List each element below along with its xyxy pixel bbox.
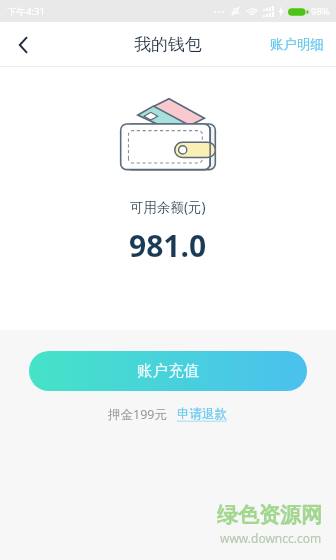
button[interactable]: 申请退款 [175, 403, 229, 425]
staticText: 绿色资源网 [217, 502, 322, 528]
staticText: 981.0 [129, 225, 207, 266]
staticText: www.downcc.com [220, 530, 322, 546]
staticText: 申请退款 [177, 406, 227, 422]
button[interactable]: 账户充值 [29, 351, 307, 391]
staticText: 账户充值 [137, 361, 199, 381]
staticText: 账户明细 [270, 36, 324, 53]
staticText: 98% [311, 5, 330, 18]
staticText: 可用余额(元) [130, 198, 206, 216]
staticText: 下午4:31 [7, 5, 45, 18]
staticText: 押金199元 [108, 406, 167, 423]
button[interactable]: Back [0, 22, 46, 67]
button[interactable]: 账户明细 [258, 22, 336, 67]
staticText: 我的钱包 [134, 34, 202, 55]
